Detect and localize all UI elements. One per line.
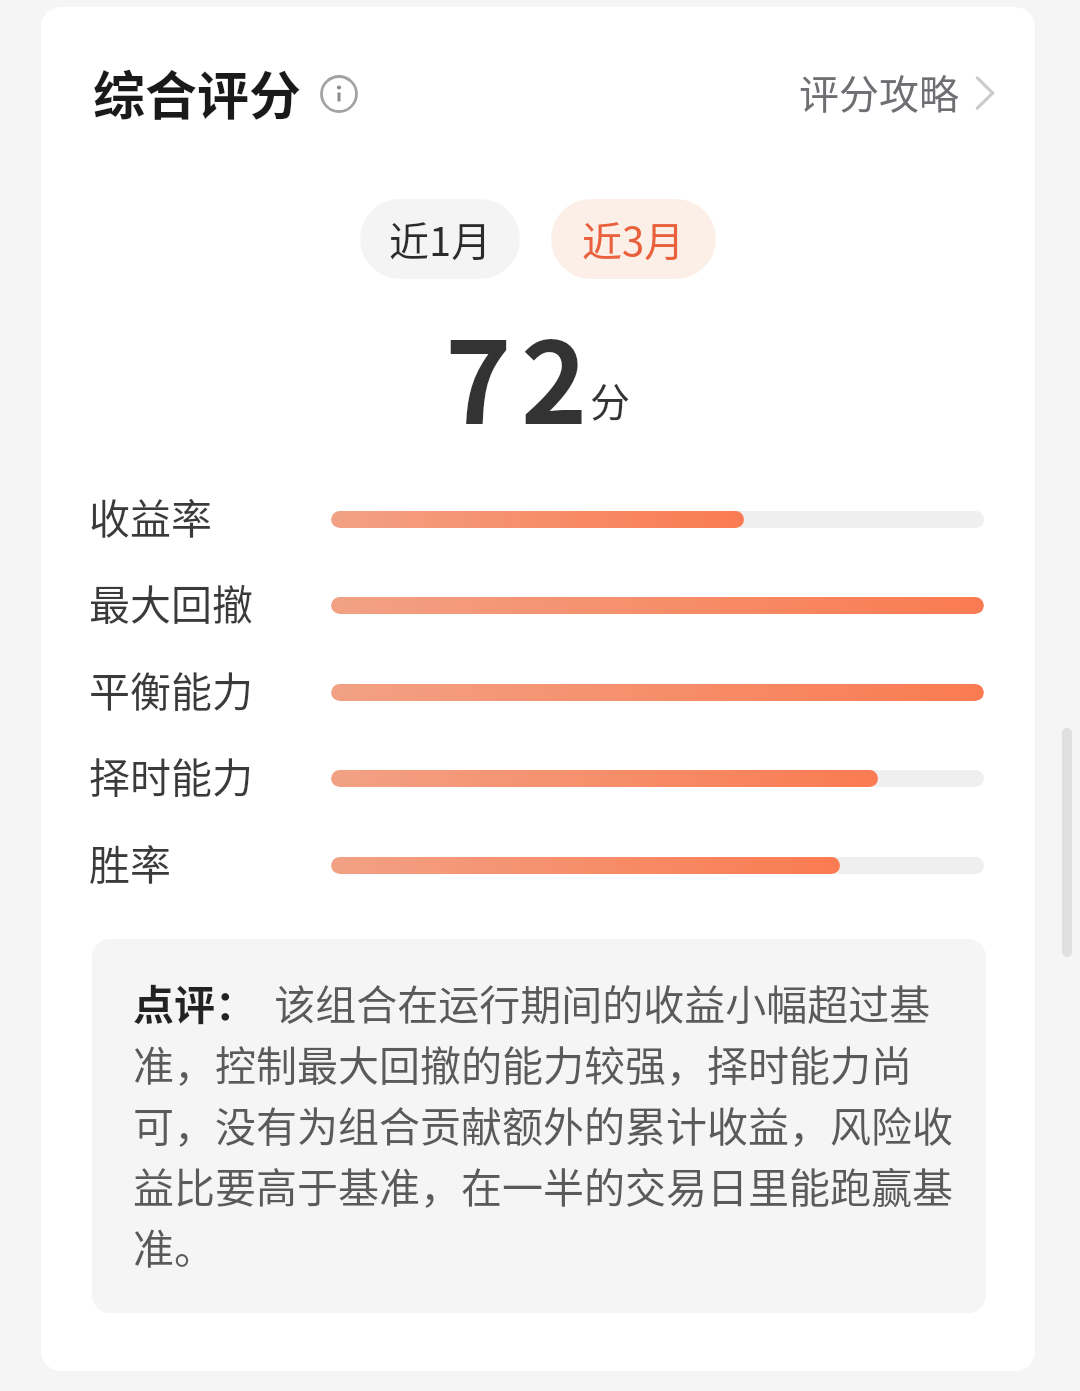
staticText: 72 (445, 293, 597, 457)
button[interactable]: 评分攻略 (799, 53, 997, 131)
staticText: 综合评分 (93, 55, 302, 130)
staticText: 胜率 (89, 832, 171, 891)
button[interactable]: Info (317, 72, 361, 116)
staticText: 收益率 (89, 486, 212, 545)
staticText: 近1月 (389, 210, 492, 268)
staticText: 最大回撤 (89, 572, 253, 631)
staticText: 评分攻略 (799, 63, 959, 121)
staticText: 择时能力 (89, 745, 253, 804)
button[interactable]: 近3月 (551, 199, 716, 279)
staticText: 平衡能力 (89, 659, 253, 718)
staticText: 近3月 (582, 210, 685, 268)
button[interactable]: 近1月 (360, 199, 520, 279)
staticText: 分 (590, 371, 630, 429)
staticText: 点评： 该组合在运行期间的收益小幅超过基准，控制最大回撤的能力较强，择时能力尚可… (133, 971, 956, 1276)
